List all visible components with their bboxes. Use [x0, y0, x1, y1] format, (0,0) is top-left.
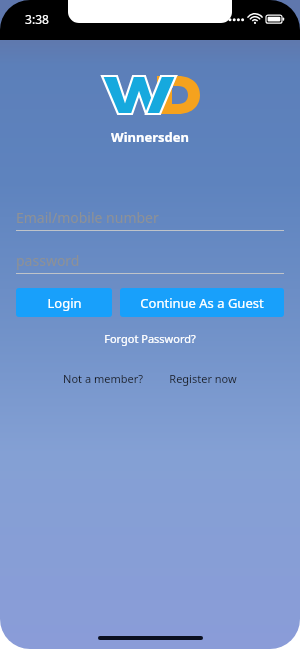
staticText: Register now [169, 371, 237, 386]
other: Signal, Wi-Fi and battery status [228, 12, 286, 26]
staticText: Winnersden [111, 128, 189, 146]
staticText: Email/mobile number [16, 208, 159, 227]
button[interactable]: Forgot Password? [98, 329, 202, 348]
button[interactable]: Register now [167, 369, 239, 388]
staticText: Forgot Password? [104, 331, 196, 346]
staticText: Login [47, 294, 82, 312]
button[interactable]: Login [16, 288, 112, 317]
staticText: Not a member? [63, 371, 143, 386]
button[interactable]: password [16, 247, 284, 273]
staticText: Continue As a Guest [140, 294, 264, 312]
staticText: 3:38 [25, 11, 49, 27]
button[interactable]: Email/mobile number [16, 204, 284, 230]
staticText: password [16, 251, 80, 270]
button[interactable]: Not a member? [61, 369, 145, 388]
button[interactable]: Continue As a Guest [120, 288, 284, 317]
